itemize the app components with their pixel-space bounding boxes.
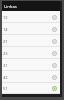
- staticText: 51: [3, 86, 52, 91]
- button[interactable]: 23: [2, 47, 60, 59]
- staticText: 14: [3, 27, 52, 32]
- button[interactable]: 12: [2, 11, 60, 23]
- button[interactable]: 42: [2, 71, 60, 83]
- button[interactable]: 31: [2, 59, 60, 71]
- staticText: 31: [3, 63, 52, 68]
- button[interactable]: 51: [2, 83, 60, 94]
- staticText: 23: [3, 51, 52, 56]
- staticText: Linhas: [4, 4, 17, 10]
- staticText: 12: [3, 15, 52, 20]
- staticText: 21: [3, 39, 52, 44]
- button[interactable]: 14: [2, 23, 60, 35]
- button[interactable]: 21: [2, 35, 60, 47]
- staticText: 42: [3, 75, 52, 80]
